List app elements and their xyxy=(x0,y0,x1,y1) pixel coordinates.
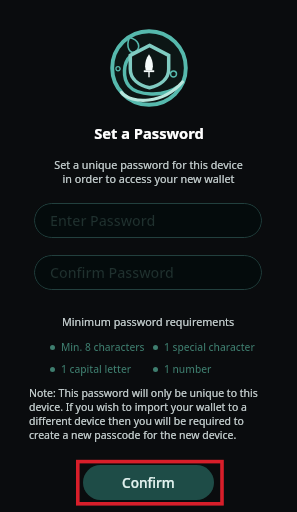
button[interactable]: Confirm xyxy=(83,465,214,500)
staticText: Confirm Password xyxy=(50,263,174,282)
staticText: 1 number xyxy=(164,362,212,376)
staticText: 1 capital letter xyxy=(61,362,132,376)
staticText: Minimum password requirements xyxy=(62,314,235,329)
staticText: 1 special character xyxy=(164,340,255,354)
staticText: Note: This password will only be unique … xyxy=(29,386,261,442)
staticText: Set a Password xyxy=(94,123,204,143)
staticText: Set a unique password for this device in… xyxy=(54,157,243,186)
staticText: Min. 8 characters xyxy=(61,340,145,354)
staticText: Confirm xyxy=(122,473,175,492)
button[interactable]: Confirm Password xyxy=(34,255,262,290)
button[interactable]: Enter Password xyxy=(34,203,262,238)
staticText: Enter Password xyxy=(50,211,156,230)
